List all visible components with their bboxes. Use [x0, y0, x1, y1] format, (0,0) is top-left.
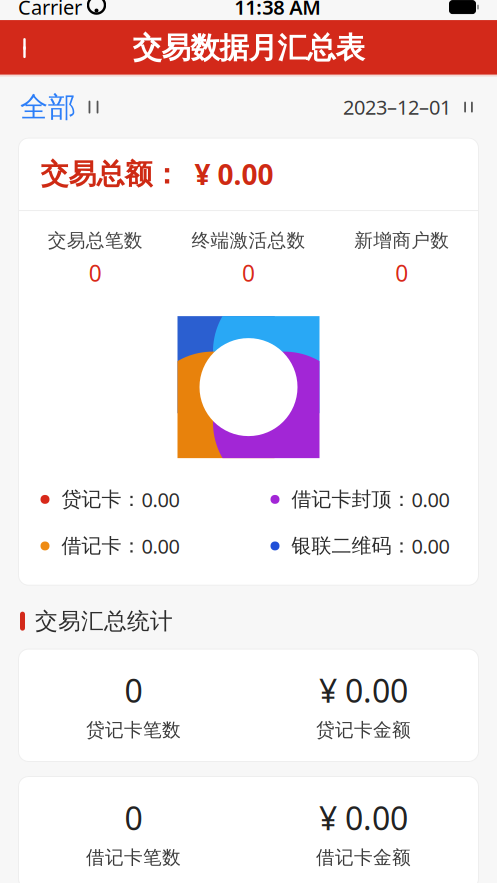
staticText: ¥ 0.00 [319, 669, 408, 712]
staticText: 贷记卡金额 [316, 719, 411, 741]
staticText: 0 [124, 669, 142, 712]
staticText: 全部 [20, 90, 76, 124]
staticText: 借记卡金额 [316, 846, 411, 869]
staticText: 2023–12–01 [343, 94, 451, 120]
button[interactable]: 0 [18, 776, 478, 883]
staticText: 贷记卡笔数 [86, 719, 181, 741]
staticText: 0 [89, 258, 102, 288]
staticText: 新增商户数 [354, 229, 449, 252]
button[interactable]: 2023–12–01 [343, 88, 477, 126]
staticText [82, 0, 87, 20]
staticText: 0 [242, 258, 255, 288]
staticText: 0 [124, 796, 142, 839]
staticText: 交易总额： [40, 157, 180, 191]
staticText: ¥ 0.00 [319, 796, 408, 839]
staticText: 0.00 [141, 486, 179, 513]
staticText: 借记卡封顶： [279, 487, 411, 512]
staticText: 0.00 [411, 533, 449, 559]
staticText: 0 [395, 258, 408, 288]
staticText: 银联二维码： [279, 534, 411, 558]
staticText: 贷记卡： [49, 487, 141, 512]
staticText: 交易汇总统计 [35, 607, 173, 635]
button[interactable]: 返回 [0, 20, 52, 76]
staticText: 0.00 [411, 486, 449, 513]
button[interactable]: 全部 [20, 84, 103, 130]
staticText: 借记卡： [49, 534, 141, 558]
staticText: 交易总笔数 [48, 229, 143, 252]
staticText: 0.00 [141, 533, 179, 559]
staticText: ¥ 0.00 [180, 155, 273, 193]
staticText: 11:38 AM [234, 0, 321, 20]
staticText: 终端激活总数 [191, 229, 305, 252]
staticText: 借记卡笔数 [86, 846, 181, 869]
button[interactable]: 0 [18, 649, 478, 761]
staticText: Carrier [18, 0, 82, 20]
staticText: 交易数据月汇总表 [132, 30, 364, 66]
